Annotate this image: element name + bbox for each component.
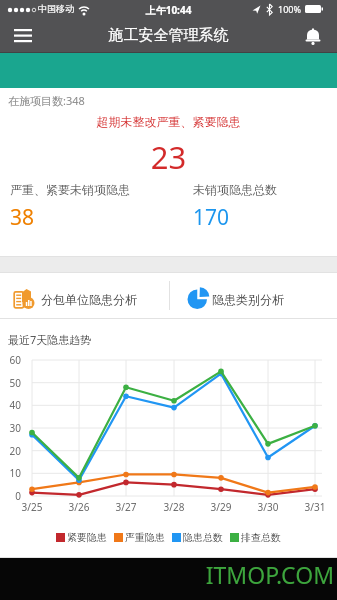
staticText: 最近7天隐患趋势 <box>8 332 92 347</box>
staticText: 100% <box>278 3 301 15</box>
staticText: 3/28 <box>156 500 192 514</box>
staticText: 0 <box>0 489 21 503</box>
staticText: 3/27 <box>108 500 144 514</box>
staticText: 未销项隐患总数 <box>193 182 277 197</box>
staticText: 排查总数 <box>241 531 281 544</box>
staticText: 38 <box>10 203 35 232</box>
staticText: 在施项目数:348 <box>8 93 85 108</box>
staticText: 分包单位隐患分析 <box>41 292 137 307</box>
staticText: 紧要隐患 <box>67 531 107 544</box>
button[interactable] <box>300 24 326 48</box>
staticText: 严重隐患 <box>125 531 165 544</box>
staticText: 施工安全管理系统 <box>0 26 337 45</box>
staticText: 3/25 <box>14 500 50 514</box>
staticText: 超期未整改严重、紧要隐患 <box>0 114 337 129</box>
staticText: 3/30 <box>250 500 286 514</box>
staticText: 3/29 <box>203 500 239 514</box>
staticText: ITMOP.COM <box>0 559 334 590</box>
staticText: 隐患总数 <box>183 531 223 544</box>
button[interactable]: 分包单位隐患分析 <box>0 273 168 318</box>
staticText: 中国移动 <box>38 3 74 14</box>
staticText: 3/26 <box>61 500 97 514</box>
staticText: 30 <box>0 421 21 435</box>
staticText: 3/31 <box>297 500 333 514</box>
staticText: 20 <box>0 444 21 458</box>
button[interactable] <box>10 26 36 46</box>
staticText: 40 <box>0 398 21 412</box>
staticText: 170 <box>193 203 230 232</box>
button[interactable]: 隐患类别分析 <box>170 273 337 318</box>
staticText: 严重、紧要未销项隐患 <box>10 182 130 197</box>
staticText: 隐患类别分析 <box>212 292 284 307</box>
staticText: 60 <box>0 353 21 367</box>
staticText: 23 <box>0 136 337 178</box>
staticText: 上午10:44 <box>0 3 337 17</box>
staticText: 50 <box>0 376 21 390</box>
staticText: 10 <box>0 466 21 480</box>
